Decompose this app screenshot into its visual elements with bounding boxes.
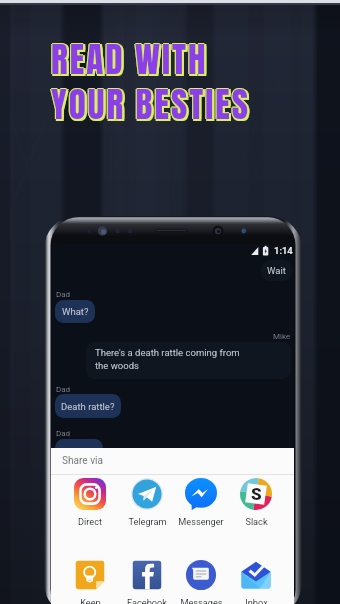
staticText: There's a death rattle coming from the w… [95, 347, 240, 372]
staticText: Inbox [245, 597, 268, 604]
button[interactable]: Direct [64, 478, 116, 527]
staticText: READ WITH [51, 32, 208, 85]
button[interactable]: Inbox [230, 559, 282, 604]
staticText: Telegram [128, 516, 167, 527]
button[interactable]: Messenger [175, 478, 227, 527]
staticText: YOUR BESTIES [51, 78, 250, 131]
button[interactable]: Facebook [121, 559, 173, 604]
staticText: Direct [78, 516, 102, 527]
staticText: Messages [180, 597, 223, 604]
staticText: READ WITH [53, 33, 210, 86]
button[interactable]: Wait [261, 260, 292, 281]
button[interactable]: S [230, 478, 282, 527]
staticText: S [251, 484, 262, 504]
staticText: Dad [56, 290, 71, 299]
button[interactable]: Telegram [121, 478, 173, 527]
staticText: READ WITH [50, 33, 207, 86]
button[interactable]: Keep [64, 559, 116, 604]
staticText: READ WITH [51, 35, 208, 88]
button[interactable]: Messages [175, 559, 227, 604]
staticText: 1:14 [274, 245, 293, 256]
staticText: Mike?? [64, 446, 94, 457]
staticText: YOUR BESTIES [52, 78, 251, 131]
button[interactable]: What? [55, 300, 95, 323]
button[interactable]: There's a death rattle coming from the w… [86, 342, 291, 379]
staticText: Keep [80, 597, 101, 604]
staticText: Dad [56, 429, 71, 438]
staticText: Wait [267, 265, 286, 276]
staticText: What? [62, 306, 89, 317]
staticText: Share via [62, 455, 104, 467]
button[interactable]: Death rattle? [55, 394, 121, 418]
staticText: READ WITH [53, 35, 210, 88]
staticText: Messenger [178, 516, 224, 527]
staticText: YOUR BESTIES [50, 78, 249, 131]
staticText: YOUR BESTIES [53, 80, 252, 133]
staticText: Facebook [127, 597, 167, 604]
button[interactable]: Mike?? [55, 439, 103, 463]
staticText: Mike [273, 332, 291, 341]
staticText: READ WITH [51, 33, 208, 86]
staticText: YOUR BESTIES [51, 80, 250, 133]
staticText: YOUR BESTIES [53, 78, 252, 131]
staticText: Dad [56, 385, 71, 394]
staticText: YOUR BESTIES [51, 77, 250, 130]
staticText: Slack [245, 516, 268, 527]
staticText: READ WITH [52, 33, 209, 86]
staticText: Death rattle? [61, 401, 115, 412]
